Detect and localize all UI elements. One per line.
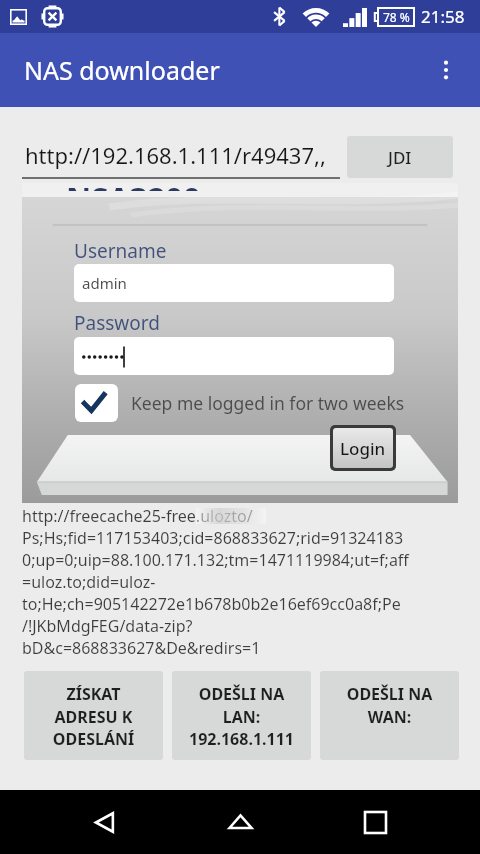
staticText: Login: [340, 437, 386, 460]
staticText: Keep me logged in for two weeks: [131, 391, 405, 415]
staticText: 0;up=0;uip=88.100.171.132;tm=1471119984;…: [22, 549, 409, 571]
button[interactable]: More options: [422, 46, 470, 94]
staticText: admin: [82, 273, 127, 293]
staticText: =uloz.to;did=uloz-: [22, 571, 156, 593]
staticText: 78 %: [383, 9, 410, 25]
button[interactable]: ODEŠLI NA WAN:: [320, 671, 459, 760]
staticText: ODEŠLI NA WAN:: [320, 683, 459, 727]
staticText: Username: [74, 238, 167, 264]
button[interactable]: JDI: [347, 136, 453, 178]
button[interactable]: ZÍSKAT ADRESU K ODESLÁNÍ: [24, 671, 163, 760]
staticText: NSA3200: [66, 186, 201, 191]
staticText: JDI: [388, 146, 412, 169]
staticText: ODEŠLI NA LAN: 192.168.1.111: [172, 683, 311, 749]
button[interactable]: Recent apps: [345, 792, 405, 852]
staticText: Password: [74, 310, 160, 336]
button[interactable]: Keep me logged in checkbox: [75, 384, 118, 422]
staticText: /!JKbMdgFEG/data-zip?: [22, 615, 193, 637]
staticText: NAS downloader: [24, 53, 220, 87]
button[interactable]: Password field: [74, 337, 394, 375]
button[interactable]: Home: [210, 792, 270, 852]
staticText: bD&c=868833627&De&redirs=1: [22, 637, 261, 659]
staticText: Ps;Hs;fid=117153403;cid=868833627;rid=91…: [22, 527, 404, 549]
staticText: http://192.168.1.111/r49437,,: [25, 140, 326, 170]
button[interactable]: Back: [75, 792, 135, 852]
button[interactable]: ODEŠLI NA LAN: 192.168.1.111: [172, 671, 311, 760]
staticText: to;He;ch=905142272e1b678b0b2e16ef69cc0a8…: [22, 593, 401, 615]
button[interactable]: Login: [333, 428, 393, 468]
staticText: 21:58: [421, 5, 465, 28]
staticText: http://freecache25-free.ulozto/: [22, 505, 253, 527]
staticText: ZÍSKAT ADRESU K ODESLÁNÍ: [24, 683, 163, 749]
button[interactable]: Username field: [74, 264, 394, 302]
